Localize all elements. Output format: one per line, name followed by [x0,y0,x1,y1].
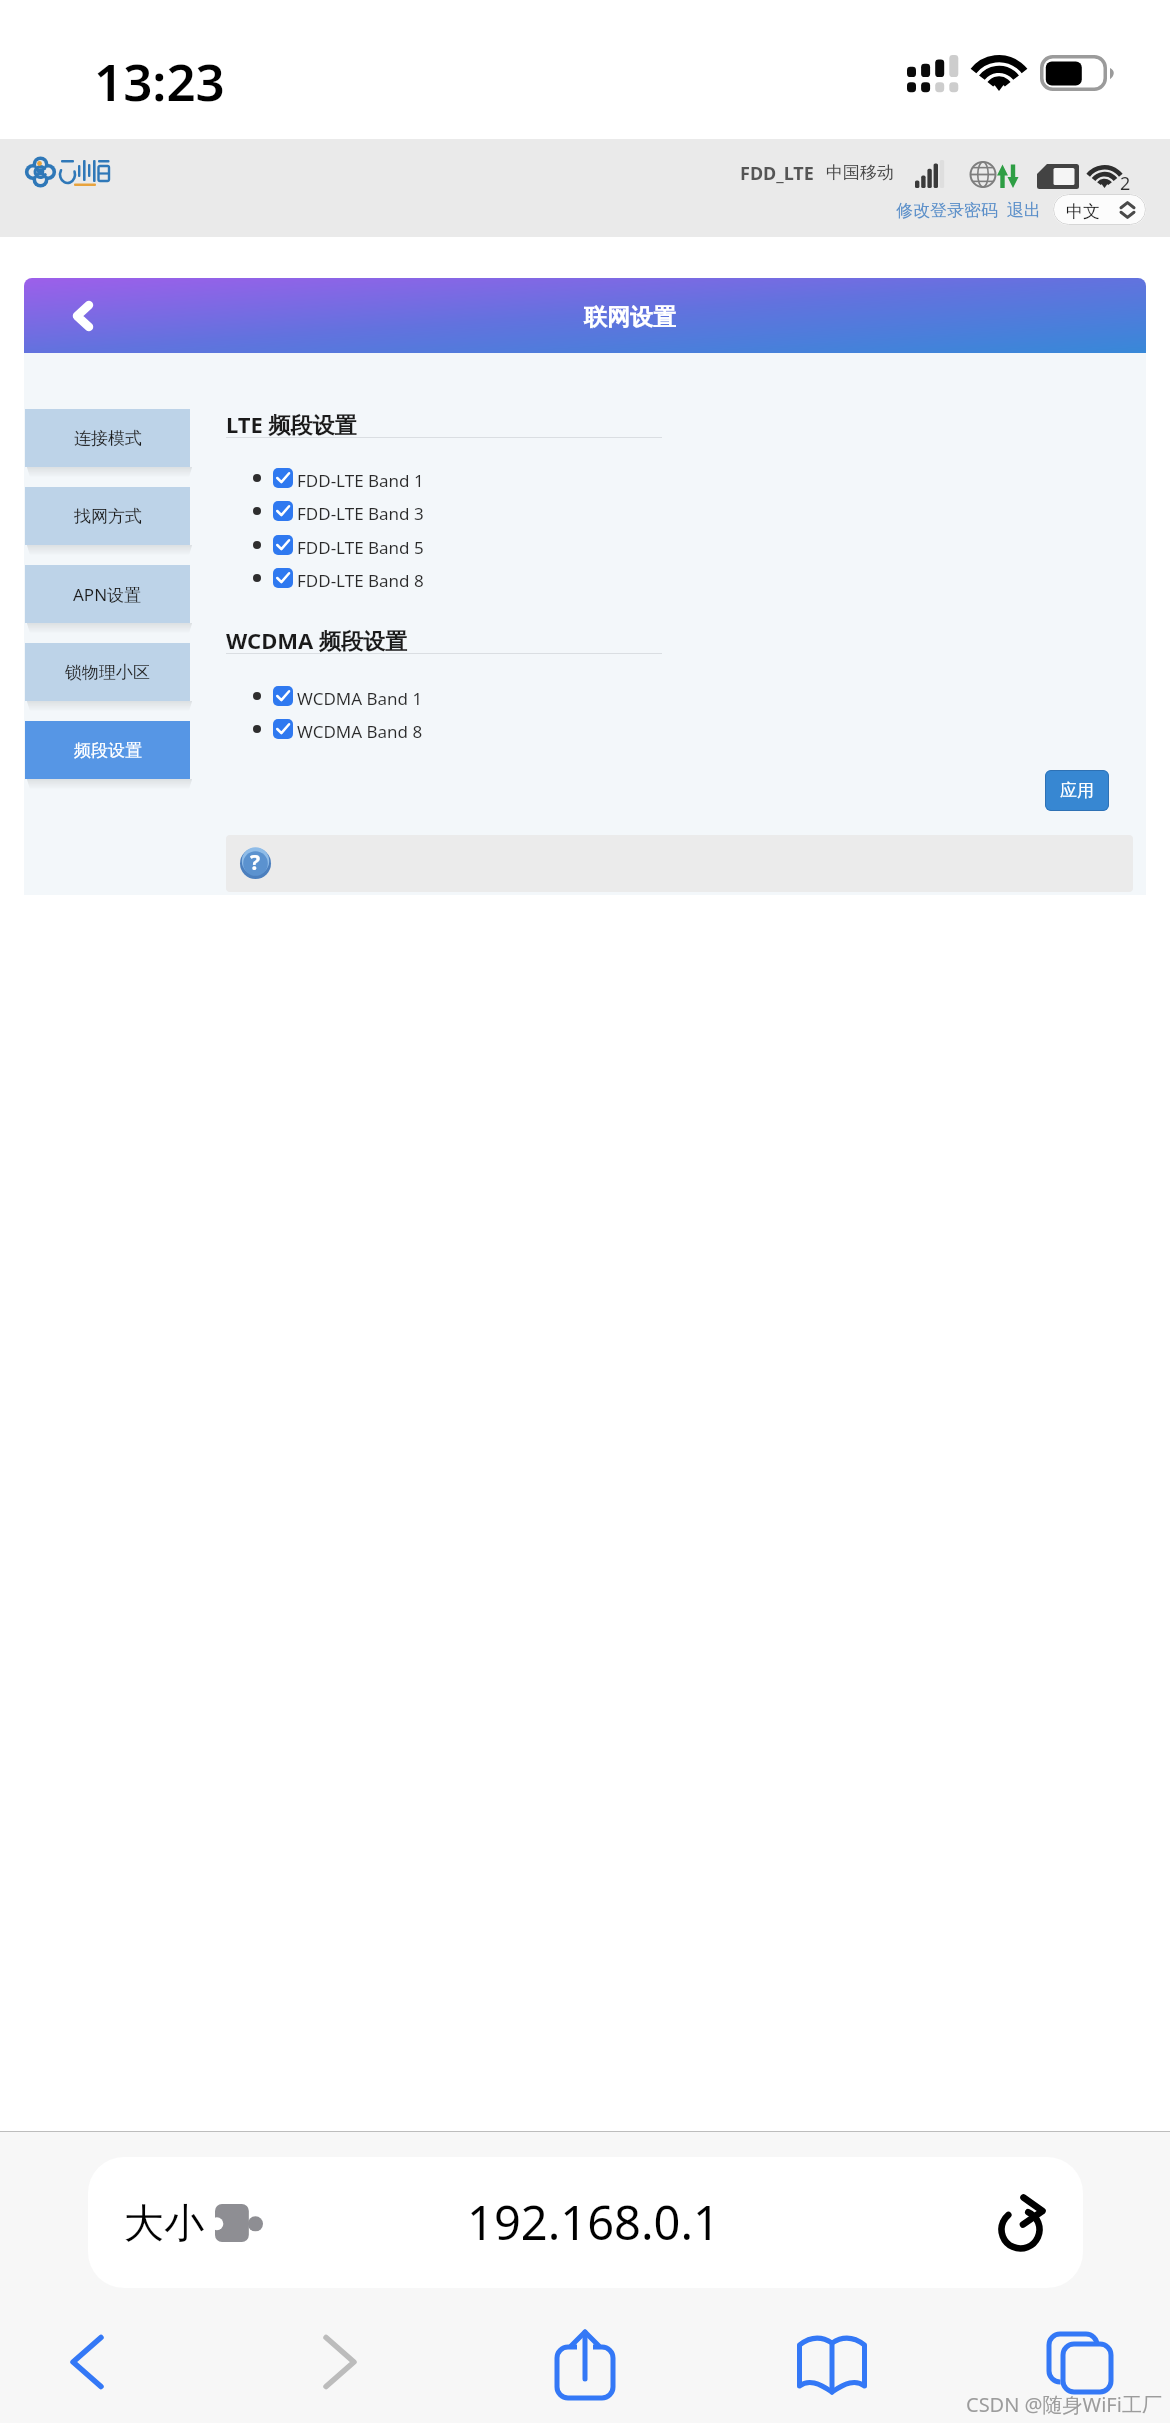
staticText: FDD-LTE Band 3 [297,502,424,525]
staticText: ? [250,848,261,877]
button[interactable]: Reload [998,2192,1054,2258]
staticText: 连接模式 [74,428,142,449]
staticText: FDD-LTE Band 5 [297,536,424,559]
button[interactable]: 连接模式 [25,409,190,467]
staticText: 应用 [1060,780,1094,801]
button[interactable]: FDD-LTE Band 8 [226,561,662,593]
button[interactable]: Bookmarks [784,2315,880,2411]
staticText: WCDMA Band 8 [297,720,423,743]
staticText: LTE 频段设置 [226,409,357,439]
button[interactable]: 退出 [1007,200,1041,221]
staticText: 大小 [124,2198,204,2248]
button[interactable]: Back [39,2314,135,2410]
button[interactable]: APN设置 [25,565,190,623]
staticText: 13:23 [94,46,225,115]
staticText: 频段设置 [74,740,142,761]
button[interactable]: 锁物理小区 [25,643,190,701]
staticText: 锁物理小区 [65,662,150,683]
staticText: FDD-LTE Band 8 [297,569,424,592]
staticText: 中文 [1066,201,1100,222]
staticText: APN设置 [73,583,142,606]
staticText: CSDN @随身WiFi工厂 [966,2391,1162,2418]
staticText: WCDMA 频段设置 [226,625,407,655]
button[interactable]: 修改登录密码 [896,200,998,221]
button[interactable]: FDD-LTE Band 5 [226,528,662,560]
button[interactable]: Share [537,2313,633,2409]
button[interactable]: Forward [292,2314,388,2410]
staticText: 192.168.0.1 [467,2190,720,2254]
button[interactable]: FDD-LTE Band 1 [226,461,662,493]
button[interactable]: WCDMA Band 1 [226,679,662,711]
staticText: WCDMA Band 1 [297,687,423,710]
button[interactable]: 应用 [1045,770,1109,811]
button[interactable]: 中文 [1053,194,1146,225]
button[interactable]: 频段设置 [25,721,190,779]
button[interactable]: FDD-LTE Band 3 [226,494,662,526]
button[interactable]: 大小 [88,2157,1083,2288]
staticText: 联网设置 [584,303,676,332]
button[interactable]: 找网方式 [25,487,190,545]
staticText: FDD-LTE Band 1 [297,469,424,492]
button[interactable]: Back [46,278,120,353]
staticText: 中国移动 [826,162,894,183]
button[interactable]: Tabs [1032,2315,1128,2411]
button[interactable]: WCDMA Band 8 [226,712,662,744]
staticText: FDD_LTE [740,161,814,186]
staticText: 2 [1120,171,1131,196]
staticText: 找网方式 [74,506,142,527]
